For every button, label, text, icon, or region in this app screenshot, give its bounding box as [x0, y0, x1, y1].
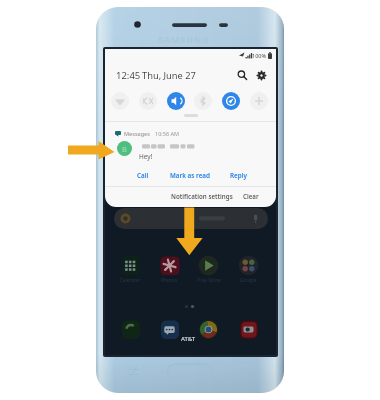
- button[interactable]: Reply: [230, 171, 247, 180]
- button[interactable]: Camera: [239, 320, 258, 339]
- staticText: Mark as read: [170, 171, 210, 180]
- staticText: Messages: [124, 130, 150, 137]
- button[interactable]: Notification settings: [171, 192, 233, 200]
- button[interactable]: Wi-Fi: [111, 92, 129, 110]
- button[interactable]: Play Store: [199, 256, 218, 275]
- staticText: Call: [137, 171, 149, 180]
- staticText: Thu, June 27: [142, 69, 196, 82]
- button[interactable]: Call: [137, 171, 149, 180]
- staticText: Google: [232, 277, 264, 284]
- button[interactable]: Mute: [139, 92, 157, 110]
- staticText: 10:56 AM: [155, 130, 179, 137]
- button[interactable]: Google search: [114, 208, 268, 229]
- button[interactable]: Sound: [167, 92, 185, 110]
- staticText: Clear: [243, 192, 259, 200]
- button[interactable]: Bluetooth: [194, 92, 212, 110]
- staticText: Notification settings: [171, 192, 233, 200]
- button[interactable]: Location: [222, 92, 240, 110]
- button[interactable]: Calendar: [121, 256, 140, 275]
- button[interactable]: Google: [239, 256, 258, 275]
- staticText: Reply: [230, 171, 247, 180]
- button[interactable]: More: [250, 92, 268, 110]
- button[interactable]: Search: [236, 69, 249, 82]
- staticText: AT&T: [181, 335, 196, 343]
- staticText: Hey!: [139, 152, 153, 161]
- button[interactable]: Clear: [243, 192, 259, 200]
- button[interactable]: Contact avatar: [117, 141, 132, 156]
- staticText: Calendar: [114, 277, 146, 284]
- button[interactable]: Settings: [255, 69, 268, 82]
- staticText: 100%: [252, 52, 267, 59]
- button[interactable]: Mark as read: [170, 171, 210, 180]
- button[interactable]: Photos: [160, 256, 179, 275]
- staticText: Play Store: [193, 277, 225, 284]
- staticText: Photos: [153, 277, 185, 284]
- button[interactable]: Chrome: [199, 320, 218, 339]
- staticText: B: [122, 144, 127, 154]
- staticText: 12:45: [116, 69, 141, 82]
- button[interactable]: Phone: [121, 320, 140, 339]
- button[interactable]: Messages: [160, 320, 179, 339]
